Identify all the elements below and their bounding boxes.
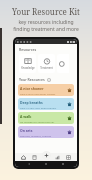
staticText: Resources [19,47,37,52]
staticText: Treatment [40,66,53,70]
staticText: Your Resource Kit [12,6,80,17]
button[interactable]: Back [26,161,32,167]
button[interactable]: A nice shower [18,84,74,96]
button[interactable]: Recents [60,161,66,167]
button[interactable]: Home [20,154,27,161]
button[interactable]: Stats [54,154,61,161]
staticText: Go outside for some fresh air [20,120,55,123]
button[interactable]: Delete [67,88,72,93]
button[interactable]: Add resource [42,151,51,160]
staticText: Your Resources [19,77,45,82]
button[interactable]: On arts [18,126,74,138]
button[interactable]: Treatment [38,54,55,73]
button[interactable]: More resources [57,54,69,73]
staticText: Take 10 very very deep breaths [20,106,57,109]
staticText: Knowledge [21,66,35,70]
button[interactable]: Deep breaths [18,98,74,110]
staticText: key resources including [18,19,74,26]
staticText: A nice shower [20,86,44,91]
button[interactable]: Home [43,161,49,167]
staticText: finding treatment and more [13,26,79,33]
button[interactable]: Delete [67,130,72,135]
button[interactable]: Journal [31,154,38,161]
staticText: Deep breaths [20,100,43,105]
button[interactable]: Library [65,154,72,161]
staticText: Take a nice long warm shower [20,92,56,95]
button[interactable]: Delete [67,116,72,121]
button[interactable]: Delete [67,102,72,107]
button[interactable]: Info [47,78,51,82]
staticText: A walk [20,114,32,119]
button[interactable]: A walk [18,112,74,124]
staticText: painting, drawing, crafting [20,134,52,137]
staticText: On arts [20,128,33,133]
button[interactable]: Knowledge [19,54,36,73]
